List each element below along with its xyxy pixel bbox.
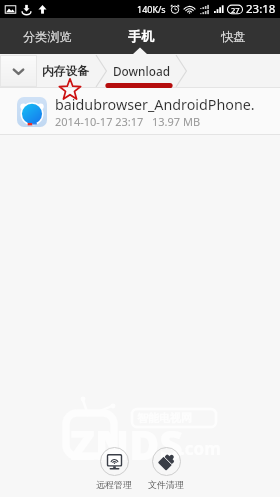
- staticText: 远程管理: [96, 479, 132, 490]
- staticText: 快盘: [221, 29, 246, 44]
- staticText: 27: [231, 5, 240, 15]
- staticText: ZNDS: [70, 416, 183, 472]
- button[interactable]: 文件清理: [143, 444, 189, 490]
- staticText: 2014-10-17 23:17 13.97 MB: [55, 114, 201, 129]
- button[interactable]: 分类浏览: [0, 18, 94, 54]
- button[interactable]: 远程管理: [91, 444, 137, 490]
- staticText: 内存设备: [42, 64, 90, 79]
- button[interactable]: baidubrowser_AndroidPhone.: [0, 88, 280, 135]
- staticText: 分类浏览: [23, 29, 72, 44]
- staticText: 手机: [128, 28, 154, 44]
- staticText: 23:18: [246, 1, 276, 17]
- button[interactable]: Show devices: [0, 56, 36, 87]
- button[interactable]: 内存设备: [36, 54, 96, 88]
- button[interactable]: Download: [107, 54, 176, 88]
- button[interactable]: 手机: [94, 18, 187, 54]
- staticText: 文件清理: [148, 479, 184, 490]
- staticText: Download: [113, 63, 170, 79]
- button[interactable]: 快盘: [187, 18, 280, 54]
- staticText: baidubrowser_AndroidPhone.: [55, 95, 255, 114]
- staticText: 140K/s: [137, 3, 166, 15]
